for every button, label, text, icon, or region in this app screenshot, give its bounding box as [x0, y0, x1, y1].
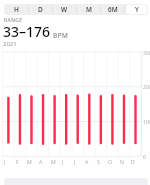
staticText: O — [108, 158, 113, 165]
staticText: A — [85, 158, 89, 165]
staticText: S — [97, 158, 100, 165]
button[interactable]: 6M — [102, 5, 123, 14]
staticText: 300 — [143, 49, 150, 56]
staticText: H — [14, 5, 19, 14]
staticText: J — [62, 158, 64, 165]
staticText: F — [16, 158, 19, 165]
button[interactable]: Y — [126, 5, 147, 14]
staticText: 2021 — [3, 40, 17, 48]
staticText: A — [39, 158, 43, 165]
staticText: D — [38, 5, 43, 14]
staticText: J — [4, 158, 6, 165]
staticText: 33–176 — [3, 22, 51, 41]
staticText: 6M — [108, 5, 118, 14]
staticText: 100 — [143, 118, 150, 125]
button[interactable]: H — [5, 5, 27, 14]
staticText: M — [27, 158, 32, 165]
button[interactable]: M — [78, 5, 99, 14]
staticText: 200 — [143, 83, 150, 90]
button[interactable]: D — [30, 5, 51, 14]
staticText: W — [61, 5, 68, 14]
staticText: M — [51, 158, 56, 165]
staticText: N — [120, 158, 124, 165]
staticText: Y — [135, 5, 139, 14]
staticText: RANGE — [4, 17, 23, 24]
staticText: 0 — [143, 153, 146, 160]
staticText: BPM — [53, 31, 69, 40]
staticText: D — [131, 158, 135, 165]
staticText: J — [74, 158, 76, 165]
button[interactable]: W — [54, 5, 75, 14]
staticText: M — [86, 5, 92, 14]
